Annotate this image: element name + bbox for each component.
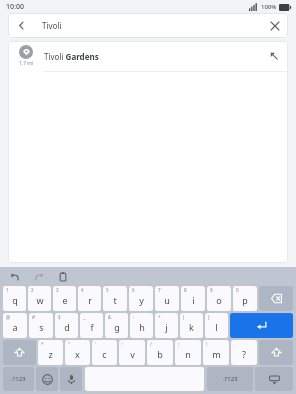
staticText: Tivoli Gardens bbox=[44, 51, 260, 62]
staticText: : bbox=[122, 341, 124, 347]
staticText: 1 bbox=[6, 287, 9, 293]
button[interactable]: Insert suggestion bbox=[260, 42, 288, 70]
button[interactable]: $ bbox=[55, 313, 78, 338]
staticText: x bbox=[75, 348, 80, 360]
staticText: # bbox=[32, 314, 35, 320]
staticText: ' bbox=[95, 341, 97, 347]
button[interactable]: Shift bbox=[3, 340, 36, 365]
staticText: . bbox=[234, 341, 236, 347]
staticText: y bbox=[139, 294, 144, 306]
button[interactable]: 2 bbox=[28, 286, 51, 311]
button[interactable]: .?123 bbox=[3, 367, 34, 391]
staticText: i bbox=[192, 294, 195, 306]
button[interactable]: + bbox=[155, 313, 178, 338]
button[interactable]: .?123 bbox=[207, 367, 253, 391]
button[interactable]: - bbox=[130, 313, 153, 338]
staticText: .?123 bbox=[223, 375, 238, 383]
staticText: l bbox=[215, 321, 218, 333]
button[interactable]: 7 bbox=[155, 286, 179, 311]
button[interactable]: _ bbox=[80, 313, 103, 338]
staticText: 100% bbox=[261, 3, 277, 11]
button[interactable]: ! bbox=[203, 340, 229, 365]
staticText: .?123 bbox=[11, 375, 26, 383]
staticText: g bbox=[114, 321, 120, 333]
button[interactable]: Backspace bbox=[259, 286, 293, 311]
staticText: r bbox=[88, 294, 92, 306]
button[interactable]: Voice input bbox=[60, 367, 82, 391]
button[interactable]: ' bbox=[92, 340, 117, 365]
staticText: 3 bbox=[56, 287, 59, 293]
staticText: & bbox=[108, 314, 112, 320]
staticText: 7 bbox=[158, 287, 161, 293]
button[interactable]: Back bbox=[8, 13, 34, 38]
staticText: j bbox=[165, 321, 168, 333]
button[interactable]: Emoji bbox=[36, 367, 58, 391]
staticText: n bbox=[185, 348, 191, 360]
button[interactable]: ; bbox=[175, 340, 201, 365]
staticText: b bbox=[157, 348, 163, 360]
staticText: v bbox=[130, 348, 135, 360]
staticText: ( bbox=[183, 314, 185, 320]
staticText: 9 bbox=[210, 287, 213, 293]
button[interactable]: 6 bbox=[129, 286, 153, 311]
button[interactable]: 1 bbox=[3, 286, 26, 311]
staticText: @ bbox=[6, 314, 11, 320]
staticText: ) bbox=[208, 314, 210, 320]
button[interactable]: Clear search bbox=[262, 13, 288, 38]
button[interactable]: * bbox=[38, 340, 63, 365]
staticText: ! bbox=[206, 341, 208, 347]
staticText: m bbox=[212, 348, 221, 360]
staticText: w bbox=[36, 294, 44, 306]
staticText: 8 bbox=[184, 287, 187, 293]
button[interactable]: ( bbox=[180, 313, 203, 338]
staticText: 2 bbox=[31, 287, 34, 293]
button[interactable]: Redo bbox=[32, 270, 46, 284]
button[interactable]: 9 bbox=[207, 286, 231, 311]
button[interactable]: Enter bbox=[230, 313, 293, 338]
staticText: p bbox=[242, 294, 248, 306]
staticText: - bbox=[133, 314, 135, 320]
button[interactable]: 8 bbox=[181, 286, 205, 311]
button[interactable]: 3 bbox=[53, 286, 76, 311]
staticText: + bbox=[158, 314, 161, 320]
button[interactable]: 1.7 mi bbox=[8, 41, 288, 71]
staticText: 1.7 mi bbox=[19, 60, 34, 67]
staticText: $ bbox=[58, 314, 61, 320]
button[interactable]: " bbox=[65, 340, 90, 365]
button[interactable]: @ bbox=[3, 313, 27, 338]
staticText: f bbox=[90, 321, 94, 333]
button[interactable]: Hide keyboard bbox=[255, 367, 293, 391]
staticText: o bbox=[216, 294, 222, 306]
staticText: q bbox=[12, 294, 18, 306]
staticText: d bbox=[64, 321, 70, 333]
staticText: z bbox=[48, 348, 53, 360]
staticText: a bbox=[12, 321, 18, 333]
staticText: h bbox=[139, 321, 145, 333]
staticText: u bbox=[164, 294, 170, 306]
button[interactable]: & bbox=[105, 313, 128, 338]
button[interactable]: ) bbox=[205, 313, 228, 338]
button[interactable]: 5 bbox=[103, 286, 127, 311]
button[interactable]: # bbox=[29, 313, 53, 338]
staticText: t bbox=[113, 294, 117, 306]
button[interactable]: Shift bbox=[259, 340, 293, 365]
staticText: c bbox=[102, 348, 107, 360]
staticText: 4 bbox=[81, 287, 84, 293]
staticText: ? bbox=[242, 348, 246, 360]
button[interactable]: / bbox=[147, 340, 173, 365]
staticText: * bbox=[41, 341, 44, 347]
button[interactable]: Undo bbox=[8, 270, 22, 284]
button[interactable]: 4 bbox=[78, 286, 101, 311]
staticText: " bbox=[68, 341, 70, 347]
staticText: s bbox=[39, 321, 44, 333]
staticText: 5 bbox=[106, 287, 109, 293]
button[interactable]: 0 bbox=[233, 286, 257, 311]
staticText: 10:00 bbox=[6, 2, 24, 12]
staticText: k bbox=[189, 321, 194, 333]
button[interactable]: : bbox=[119, 340, 145, 365]
button[interactable]: Clipboard bbox=[56, 270, 70, 284]
staticText: e bbox=[62, 294, 68, 306]
button[interactable]: . bbox=[231, 340, 257, 365]
staticText: ; bbox=[178, 341, 180, 347]
